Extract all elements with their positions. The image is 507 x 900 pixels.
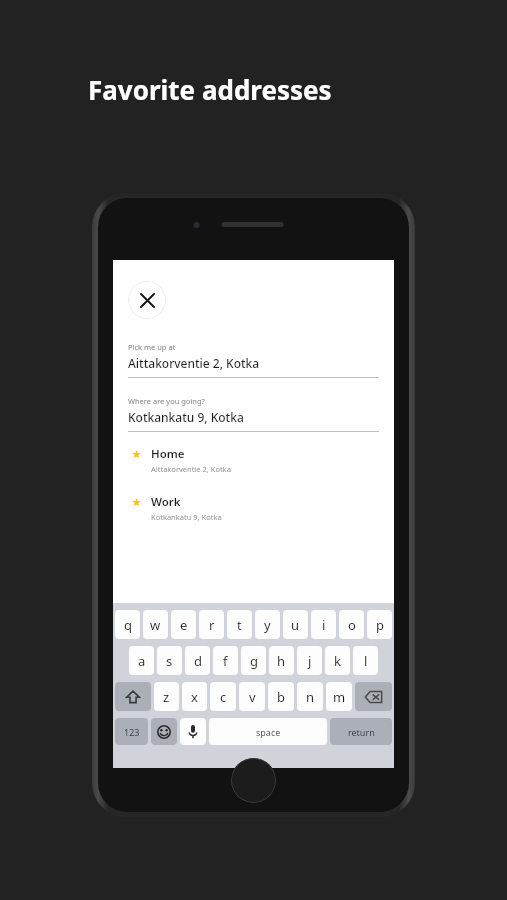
staticText: d bbox=[194, 652, 202, 670]
button[interactable]: 123 bbox=[115, 718, 148, 745]
button[interactable]: Work bbox=[128, 494, 379, 522]
button[interactable]: q bbox=[115, 610, 140, 639]
button[interactable]: j bbox=[297, 646, 322, 675]
button[interactable]: x bbox=[182, 682, 207, 711]
staticText: Kotkankatu 9, Kotka bbox=[128, 409, 244, 425]
staticText: x bbox=[191, 688, 198, 706]
staticText: Aittakorventie 2, Kotka bbox=[128, 355, 260, 371]
button[interactable]: f bbox=[213, 646, 238, 675]
button[interactable]: u bbox=[283, 610, 308, 639]
button[interactable]: w bbox=[143, 610, 168, 639]
button[interactable]: Emoji bbox=[151, 718, 177, 745]
staticText: Work bbox=[151, 494, 181, 510]
staticText: p bbox=[376, 616, 384, 634]
button[interactable]: l bbox=[353, 646, 378, 675]
button[interactable]: z bbox=[154, 682, 179, 711]
staticText: 123 bbox=[124, 726, 140, 738]
button[interactable]: Home button bbox=[231, 758, 276, 803]
staticText: e bbox=[180, 616, 188, 634]
staticText: y bbox=[264, 616, 271, 634]
staticText: v bbox=[249, 688, 256, 706]
button[interactable]: r bbox=[199, 610, 224, 639]
staticText: i bbox=[322, 616, 326, 634]
staticText: w bbox=[150, 616, 161, 634]
staticText: b bbox=[277, 688, 285, 706]
button[interactable]: return bbox=[330, 718, 392, 745]
button[interactable]: e bbox=[171, 610, 196, 639]
button[interactable]: Home bbox=[128, 446, 379, 474]
staticText: a bbox=[138, 652, 146, 670]
staticText: n bbox=[306, 688, 315, 706]
staticText: j bbox=[308, 652, 312, 670]
staticText: k bbox=[334, 652, 341, 670]
button[interactable]: m bbox=[326, 682, 352, 711]
button[interactable]: a bbox=[129, 646, 154, 675]
staticText: m bbox=[333, 688, 346, 706]
staticText: o bbox=[348, 616, 356, 634]
button[interactable]: Backspace bbox=[355, 682, 392, 711]
button[interactable]: t bbox=[227, 610, 252, 639]
staticText: Favorite addresses bbox=[88, 72, 332, 107]
staticText: Where are you going? bbox=[128, 396, 205, 406]
button[interactable]: c bbox=[210, 682, 236, 711]
button[interactable]: g bbox=[241, 646, 266, 675]
button[interactable]: o bbox=[339, 610, 364, 639]
staticText: h bbox=[277, 652, 286, 670]
button[interactable]: Close bbox=[128, 281, 166, 319]
button[interactable]: Voice input bbox=[180, 718, 206, 745]
staticText: Kotkankatu 9, Kotka bbox=[151, 512, 222, 522]
staticText: s bbox=[166, 652, 173, 670]
staticText: g bbox=[250, 652, 258, 670]
button[interactable]: Pick me up at bbox=[128, 342, 379, 378]
staticText: Aittakorventie 2, Kotka bbox=[151, 464, 231, 474]
button[interactable]: Shift bbox=[115, 682, 151, 711]
button[interactable]: p bbox=[367, 610, 392, 639]
staticText: c bbox=[220, 688, 227, 706]
staticText: u bbox=[291, 616, 300, 634]
button[interactable]: d bbox=[185, 646, 210, 675]
button[interactable]: v bbox=[239, 682, 265, 711]
staticText: Home bbox=[151, 446, 185, 462]
button[interactable]: y bbox=[255, 610, 280, 639]
staticText: r bbox=[209, 616, 215, 634]
button[interactable]: space bbox=[209, 718, 327, 745]
button[interactable]: h bbox=[269, 646, 294, 675]
staticText: f bbox=[223, 652, 228, 670]
staticText: return bbox=[348, 726, 375, 738]
staticText: l bbox=[364, 652, 368, 670]
button[interactable]: k bbox=[325, 646, 350, 675]
staticText: t bbox=[237, 616, 242, 634]
staticText: Pick me up at bbox=[128, 342, 176, 352]
button[interactable]: s bbox=[157, 646, 182, 675]
button[interactable]: Where are you going? bbox=[128, 396, 379, 432]
staticText: q bbox=[124, 616, 132, 634]
button[interactable]: n bbox=[297, 682, 323, 711]
button[interactable]: b bbox=[268, 682, 294, 711]
staticText: space bbox=[256, 726, 281, 738]
button[interactable]: i bbox=[311, 610, 336, 639]
staticText: z bbox=[163, 688, 170, 706]
